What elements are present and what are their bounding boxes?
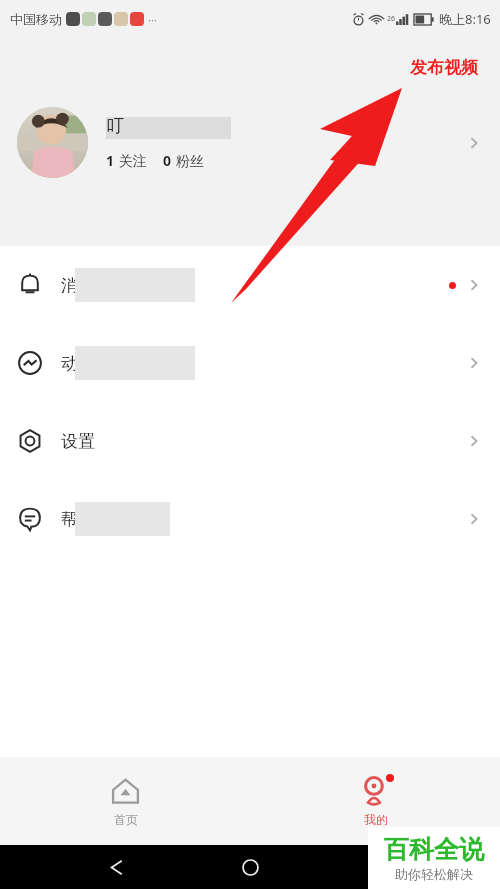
- staticText: 发布视频: [410, 57, 478, 78]
- staticText: 1: [106, 151, 115, 170]
- button[interactable]: 设置: [0, 402, 500, 480]
- staticText: 消息通知: [61, 275, 129, 296]
- staticText: ···: [148, 12, 157, 27]
- button[interactable]: Recents: [367, 850, 401, 884]
- staticText: 26: [387, 14, 396, 24]
- staticText: 助你轻松解决: [395, 866, 473, 882]
- staticText: 动态消息: [61, 353, 129, 374]
- staticText: 设置: [61, 431, 95, 452]
- button[interactable]: 叮: [0, 107, 500, 178]
- staticText: 帮: [61, 509, 78, 530]
- staticText: 关注: [115, 151, 147, 170]
- staticText: 中国移动: [10, 11, 62, 27]
- button[interactable]: 首页: [0, 757, 250, 845]
- staticText: 首页: [114, 812, 138, 827]
- staticText: 百科全说: [384, 834, 484, 865]
- button[interactable]: 帮: [0, 480, 500, 558]
- button[interactable]: Home: [233, 850, 267, 884]
- button[interactable]: Back: [100, 850, 134, 884]
- staticText: 粉丝: [172, 151, 204, 170]
- button[interactable]: 我的: [250, 757, 500, 845]
- staticText: 我的: [364, 812, 388, 827]
- staticText: 0: [163, 151, 172, 170]
- button[interactable]: 消息通知: [0, 246, 500, 324]
- staticText: 叮: [106, 115, 124, 138]
- staticText: 晚上8:16: [439, 10, 491, 28]
- button[interactable]: 动态消息: [0, 324, 500, 402]
